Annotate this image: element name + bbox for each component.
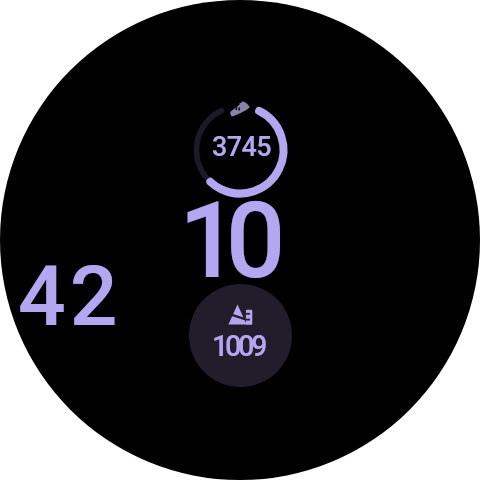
button[interactable] — [188, 96, 292, 204]
staticText: 10 — [179, 180, 273, 303]
staticText: 3745 — [212, 131, 271, 163]
button[interactable] — [189, 284, 292, 387]
staticText: 1009 — [212, 329, 264, 363]
staticText: 42 — [18, 247, 122, 345]
